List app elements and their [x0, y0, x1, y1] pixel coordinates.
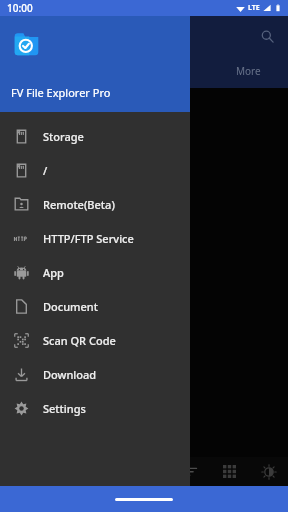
staticText: nginx	[25, 411, 48, 423]
button[interactable]: Document	[0, 289, 190, 323]
button[interactable]: Pictures	[72, 432, 144, 488]
staticText: /	[43, 163, 48, 178]
button[interactable]: backup	[0, 147, 72, 204]
button[interactable]: Lifesense	[72, 261, 144, 318]
staticText: NewSave	[18, 297, 55, 309]
button[interactable]: Android	[72, 90, 144, 147]
button[interactable]: HTTP/FTP Service	[0, 221, 190, 255]
staticText: LTE	[248, 3, 260, 13]
staticText: Download	[43, 367, 97, 382]
button[interactable]: backups	[72, 147, 144, 204]
staticText: HTTP/FTP Service	[43, 231, 134, 246]
button[interactable]: App	[0, 255, 190, 289]
button[interactable]: FV File Explorer Pro	[0, 16, 190, 112]
button[interactable]: Storage	[0, 119, 190, 153]
button[interactable]: Toggle theme	[254, 457, 283, 486]
staticText: 10:00	[7, 1, 33, 15]
staticText: data	[99, 240, 117, 252]
staticText: Lifesense	[89, 297, 127, 309]
staticText: Document	[43, 299, 98, 314]
button[interactable]: DCIM	[0, 204, 72, 261]
button[interactable]: push	[0, 318, 72, 375]
button[interactable]: NewSave	[0, 261, 72, 318]
button[interactable]: obb	[0, 432, 72, 488]
staticText: Storage	[43, 129, 84, 144]
button[interactable]: Grid view	[215, 457, 244, 486]
staticText: App	[43, 265, 64, 280]
staticText: Settings	[43, 401, 86, 416]
button[interactable]: data	[72, 204, 144, 261]
button[interactable]: Scan QR Code	[0, 323, 190, 357]
staticText: Scan QR Code	[43, 333, 116, 348]
button[interactable]: Search	[256, 25, 278, 47]
button[interactable]: Download	[0, 357, 190, 391]
staticText: FV File Explorer Pro	[11, 85, 111, 100]
button[interactable]: Settings	[0, 391, 190, 425]
button[interactable]: nginx	[0, 375, 72, 432]
button[interactable]: Notifications	[72, 375, 144, 432]
button[interactable]: More	[236, 64, 261, 78]
button[interactable]: Remote(Beta)	[0, 187, 190, 221]
staticText: Remote(Beta)	[43, 197, 115, 212]
button[interactable]: /	[0, 153, 190, 187]
button[interactable]: Sort	[176, 457, 205, 486]
button[interactable]: Mob	[72, 318, 144, 375]
staticText: DCIM	[25, 240, 48, 252]
staticText: alarms	[22, 126, 50, 138]
button[interactable]: alarms	[0, 90, 72, 147]
staticText: Notifications	[83, 411, 134, 423]
